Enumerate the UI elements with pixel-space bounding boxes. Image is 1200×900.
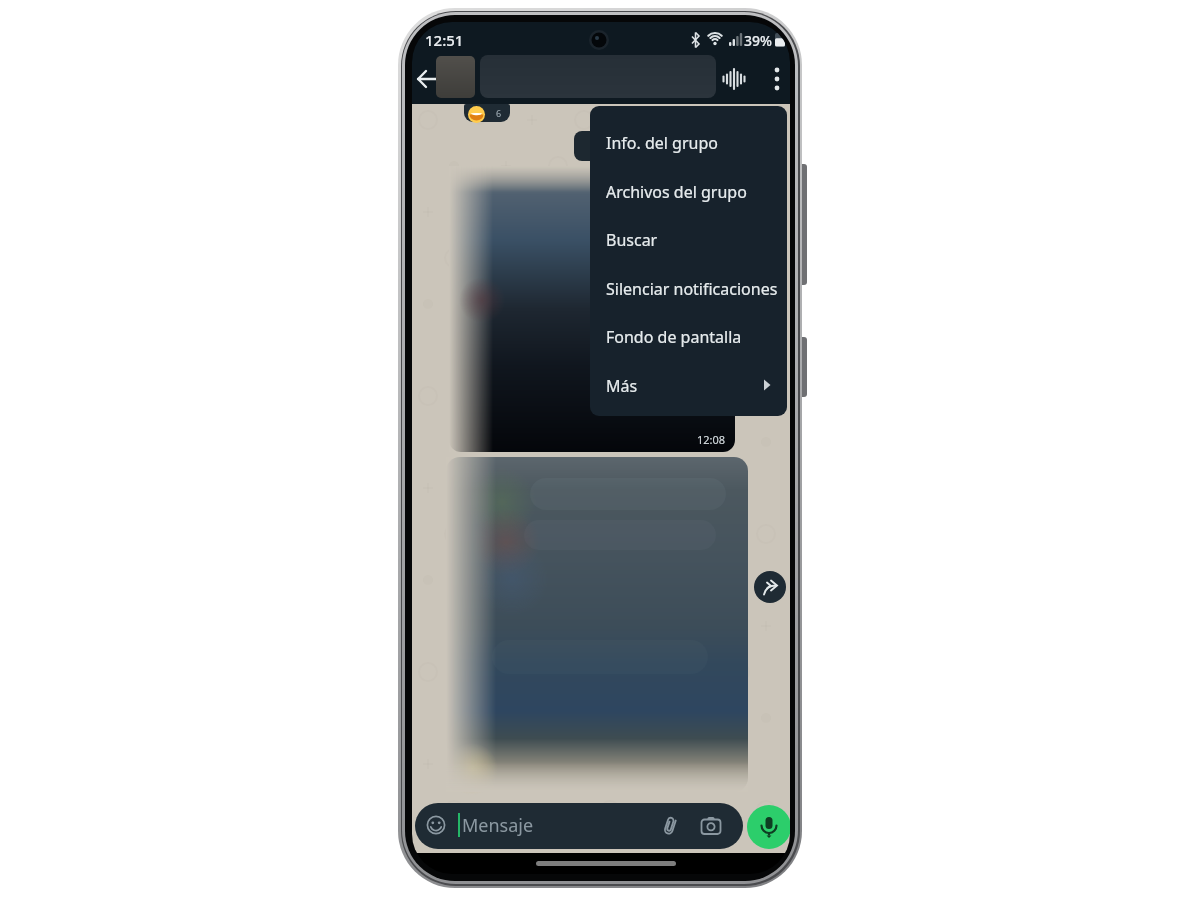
button[interactable] <box>415 803 743 849</box>
button[interactable]: Silenciar notificaciones <box>590 264 787 313</box>
button[interactable]: Archivos del grupo <box>590 167 787 216</box>
button[interactable] <box>747 805 790 849</box>
staticText: Silenciar notificaciones <box>606 278 778 300</box>
staticText: 39% <box>744 31 772 50</box>
button[interactable] <box>764 65 790 93</box>
button[interactable]: Fondo de pantalla <box>590 312 787 361</box>
staticText: Info. del grupo <box>606 132 718 154</box>
staticText: Mensaje <box>462 813 534 837</box>
button[interactable]: Buscar <box>590 215 787 264</box>
button[interactable] <box>720 65 748 93</box>
button[interactable]: Más <box>590 361 787 410</box>
staticText: 12:51 <box>425 30 464 50</box>
staticText: Más <box>606 375 638 397</box>
staticText: Archivos del grupo <box>606 181 747 203</box>
button[interactable]: Info. del grupo <box>590 118 787 167</box>
button[interactable] <box>754 571 786 603</box>
staticText: 6 <box>496 107 502 119</box>
staticText: Fondo de pantalla <box>606 326 742 348</box>
button[interactable] <box>412 64 442 94</box>
staticText: 12:08 <box>697 432 726 446</box>
staticText: Buscar <box>606 229 658 251</box>
